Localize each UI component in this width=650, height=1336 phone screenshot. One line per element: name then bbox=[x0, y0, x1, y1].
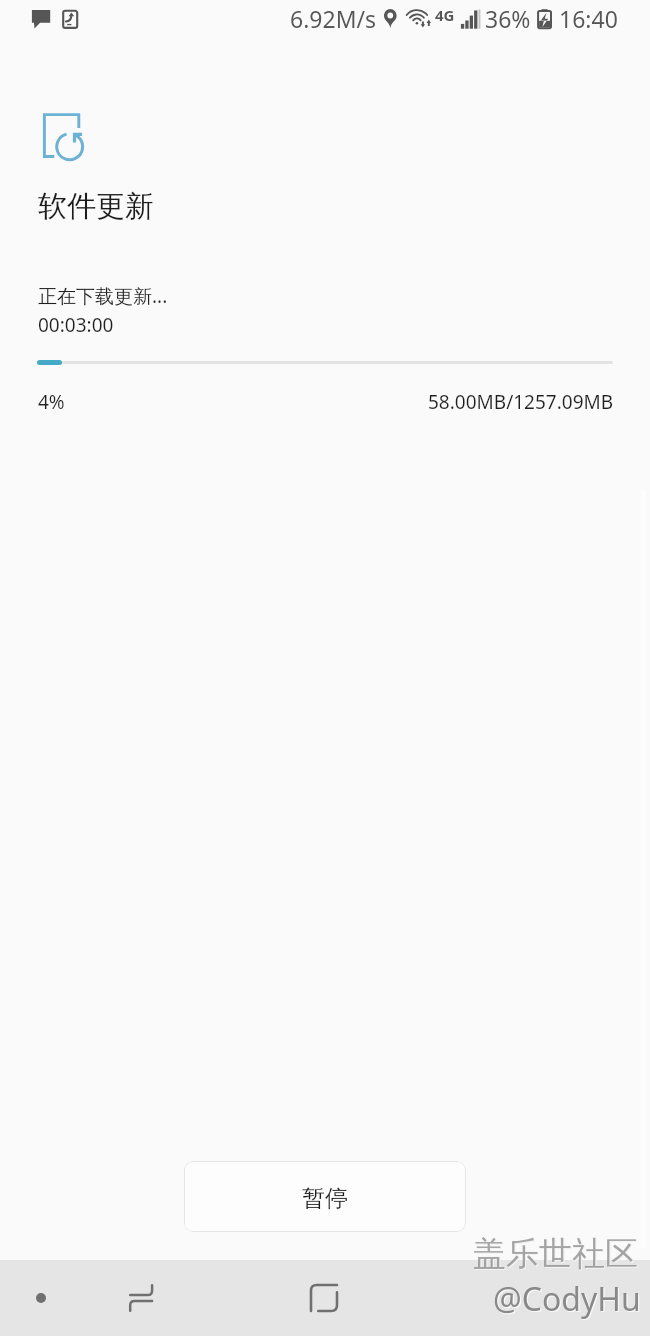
staticText: @CodyHu bbox=[494, 1278, 642, 1322]
staticText: 16:40 bbox=[559, 3, 618, 34]
button[interactable]: 暂停 bbox=[184, 1161, 466, 1232]
staticText: 6.92M/s bbox=[290, 3, 377, 34]
staticText: 36% bbox=[485, 3, 531, 34]
button[interactable]: Recent apps bbox=[111, 1268, 171, 1328]
staticText: 58.00MB/1257.09MB bbox=[428, 389, 614, 415]
staticText: 盖乐世社区 bbox=[474, 1234, 639, 1276]
staticText: 正在下载更新... bbox=[38, 283, 168, 309]
button[interactable]: Back bbox=[11, 1268, 71, 1328]
staticText: @CodyHu bbox=[493, 1277, 641, 1321]
staticText: 软件更新 bbox=[38, 188, 154, 225]
staticText: 00:03:00 bbox=[38, 312, 114, 338]
button[interactable]: Home bbox=[294, 1268, 354, 1328]
staticText: 4G bbox=[435, 5, 455, 25]
staticText: 盖乐世社区 bbox=[473, 1233, 638, 1275]
staticText: 4% bbox=[38, 389, 65, 415]
staticText: 暂停 bbox=[302, 1184, 348, 1213]
